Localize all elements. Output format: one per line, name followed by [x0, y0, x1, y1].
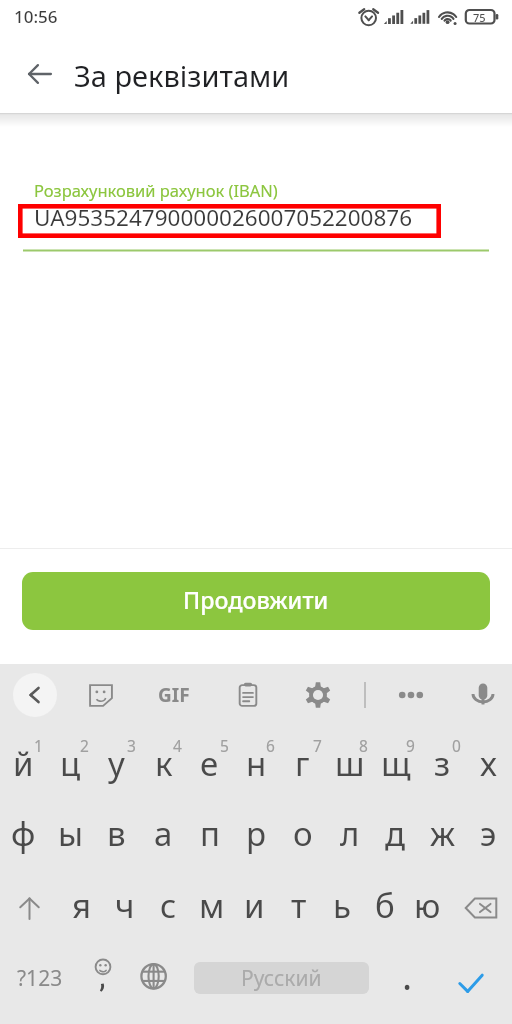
button[interactable]: ч	[103, 872, 146, 942]
button[interactable]: Settings	[298, 675, 338, 715]
staticText: 1	[34, 735, 43, 753]
staticText: л	[340, 811, 360, 856]
staticText: Продовжити	[183, 584, 329, 616]
button[interactable]: б	[363, 872, 406, 942]
button[interactable]: и	[233, 872, 276, 942]
staticText: т	[291, 883, 307, 928]
staticText: о	[293, 811, 313, 856]
staticText: ?123	[17, 964, 63, 993]
button[interactable]: Shift	[0, 873, 59, 943]
staticText: UA953524790000026007052200876	[34, 202, 413, 233]
staticText: ф	[11, 811, 36, 856]
button[interactable]: я	[60, 872, 103, 942]
button[interactable]: е	[186, 730, 233, 800]
staticText: GIF	[158, 682, 190, 708]
button[interactable]: з	[419, 730, 466, 800]
button[interactable]: ш	[326, 730, 373, 800]
staticText: н	[246, 741, 267, 786]
staticText: б	[375, 883, 395, 928]
staticText: 2	[80, 735, 89, 753]
staticText: 10:56	[14, 5, 58, 28]
button[interactable]: ?123	[0, 940, 80, 1020]
staticText: 75	[473, 10, 486, 24]
staticText: ю	[414, 883, 441, 928]
button[interactable]: ц	[47, 730, 94, 800]
button[interactable]: Продовжити	[22, 572, 490, 630]
staticText: 7	[313, 735, 322, 753]
staticText: 6	[266, 735, 275, 753]
button[interactable]: л	[326, 800, 373, 870]
staticText: с	[160, 883, 177, 928]
button[interactable]: Clipboard	[228, 675, 268, 715]
staticText: г	[295, 741, 310, 786]
button[interactable]: х	[465, 730, 512, 800]
button[interactable]: GIF	[153, 678, 195, 712]
staticText: я	[72, 883, 92, 928]
button[interactable]: ы	[47, 800, 94, 870]
staticText: .	[402, 949, 413, 1001]
staticText: 0	[452, 735, 461, 753]
staticText: х	[480, 741, 497, 786]
button[interactable]: Stickers	[81, 675, 121, 715]
staticText: ь	[333, 883, 351, 928]
button[interactable]: Emoji	[80, 940, 128, 1020]
button[interactable]: к	[140, 730, 187, 800]
button[interactable]: ю	[406, 872, 449, 942]
button[interactable]: ь	[320, 872, 363, 942]
button[interactable]: с	[147, 872, 190, 942]
button[interactable]: в	[93, 800, 140, 870]
staticText: щ	[381, 741, 411, 786]
button[interactable]: н	[233, 730, 280, 800]
button[interactable]: Backspace	[449, 873, 512, 943]
staticText: э	[480, 811, 497, 856]
button[interactable]: щ	[372, 730, 419, 800]
staticText: ш	[335, 741, 365, 786]
button[interactable]: р	[233, 800, 280, 870]
staticText: п	[200, 811, 220, 856]
staticText: м	[199, 883, 225, 928]
button[interactable]: э	[465, 800, 512, 870]
button[interactable]: Back	[18, 52, 62, 96]
staticText: ц	[60, 741, 81, 786]
button[interactable]: й	[0, 730, 47, 800]
button[interactable]: д	[372, 800, 419, 870]
staticText: 8	[359, 735, 368, 753]
staticText: Розрахунковий рахунок (IBAN)	[34, 179, 278, 201]
staticText: д	[385, 811, 406, 856]
button[interactable]: а	[140, 800, 187, 870]
button[interactable]: Enter	[437, 940, 505, 1020]
button[interactable]: г	[279, 730, 326, 800]
staticText: р	[246, 811, 267, 856]
button[interactable]: у	[93, 730, 140, 800]
staticText: в	[107, 811, 126, 856]
staticText: За реквізитами	[74, 56, 290, 95]
staticText: 3	[127, 735, 136, 753]
staticText: Русский	[241, 964, 322, 993]
staticText: и	[244, 883, 265, 928]
button[interactable]: ж	[419, 800, 466, 870]
button[interactable]: т	[277, 872, 320, 942]
staticText: е	[200, 741, 219, 786]
button[interactable]: м	[190, 872, 233, 942]
button[interactable]: More options	[391, 675, 431, 715]
staticText: 9	[406, 735, 415, 753]
button[interactable]: .	[380, 940, 434, 1020]
staticText: ж	[430, 811, 456, 856]
button[interactable]: п	[186, 800, 233, 870]
staticText: ы	[58, 811, 84, 856]
staticText: з	[434, 741, 451, 786]
staticText: 5	[220, 735, 229, 753]
staticText: 4	[173, 735, 182, 753]
staticText: й	[13, 741, 34, 786]
button[interactable]: Change language	[128, 940, 180, 1020]
button[interactable]: о	[279, 800, 326, 870]
staticText: у	[108, 741, 125, 786]
staticText: ч	[115, 883, 135, 928]
staticText: к	[155, 741, 173, 786]
staticText: а	[154, 811, 173, 856]
button[interactable]: Voice input	[463, 676, 503, 716]
button[interactable]: Back	[13, 673, 57, 717]
button[interactable]: Русский	[194, 962, 369, 994]
button[interactable]: ф	[0, 800, 47, 870]
